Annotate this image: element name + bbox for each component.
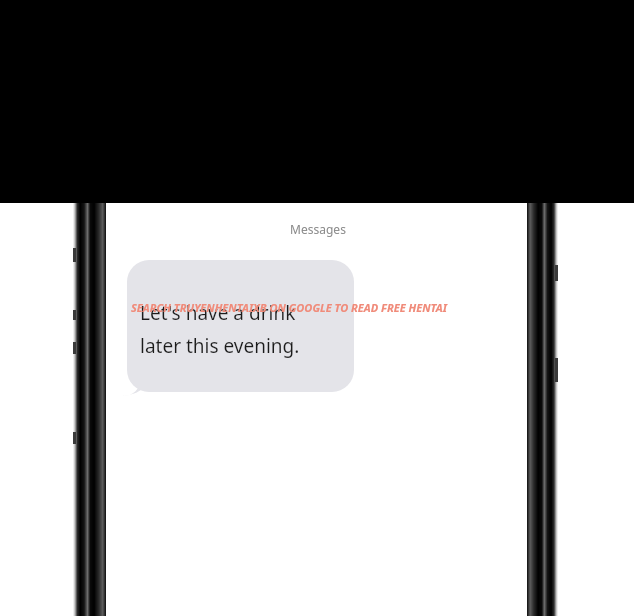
staticText: Let's have a drink (140, 300, 296, 326)
staticText: Messages (268, 221, 368, 616)
button[interactable]: Let's have a drink (118, 260, 354, 396)
staticText: SEARCH TRUYENHENTAIXB ON GOOGLE TO READ … (131, 300, 447, 315)
staticText: later this evening. (140, 333, 300, 359)
button[interactable]: Messages (268, 221, 368, 616)
